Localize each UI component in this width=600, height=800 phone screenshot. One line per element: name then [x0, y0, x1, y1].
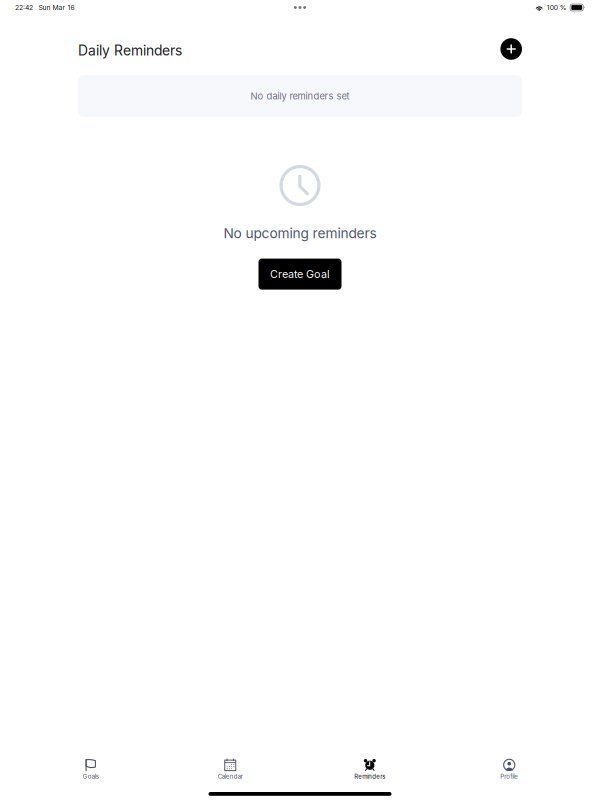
staticText: Reminders	[354, 773, 385, 780]
staticText: 22:42	[15, 3, 33, 12]
button[interactable]: Add reminder	[496, 34, 526, 64]
button[interactable]: Profile	[439, 757, 579, 782]
staticText: Goals	[83, 773, 99, 780]
staticText: 100 %	[547, 3, 567, 12]
staticText: Daily Reminders	[78, 42, 182, 59]
staticText: Calendar	[218, 773, 243, 780]
staticText: Create Goal	[270, 268, 330, 281]
button[interactable]: Create Goal	[258, 259, 341, 290]
button[interactable]: Calendar	[160, 757, 300, 782]
staticText: Sun Mar 16	[38, 3, 74, 12]
staticText: No daily reminders set	[250, 90, 349, 102]
button[interactable]: Goals	[21, 757, 160, 782]
staticText: Profile	[500, 773, 518, 780]
staticText: No upcoming reminders	[223, 225, 376, 242]
button[interactable]: Reminders	[300, 757, 439, 782]
